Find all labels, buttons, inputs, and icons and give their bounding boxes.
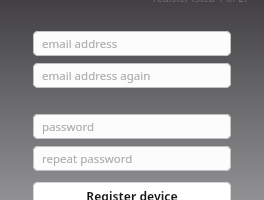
button[interactable]: Register device [33,182,231,200]
staticText: email address again [42,68,151,84]
button[interactable]: email address again [33,63,231,88]
button[interactable]: password [33,114,231,139]
staticText: repeat password [42,151,133,167]
staticText: password [42,119,95,135]
button[interactable]: repeat password [33,146,231,171]
staticText: register (step 1 of 2) [153,0,247,2]
staticText: email address [42,36,118,52]
staticText: Register device [86,188,178,200]
button[interactable]: email address [33,31,231,56]
